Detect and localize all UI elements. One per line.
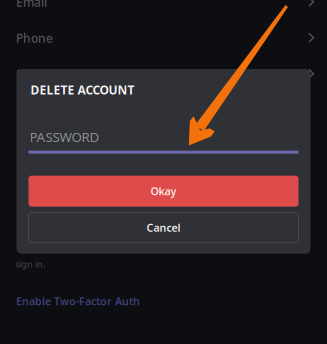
- staticText: DELETE ACCOUNT: [30, 82, 134, 98]
- staticText: Facebook: [16, 66, 70, 82]
- button[interactable]: Enable Two-Factor Auth: [0, 294, 156, 308]
- button[interactable]: Email: [0, 0, 327, 20]
- staticText: Email: [16, 0, 47, 10]
- staticText: Okay: [150, 184, 176, 198]
- staticText: Cancel: [146, 221, 180, 235]
- staticText: sign in.: [15, 258, 46, 270]
- button[interactable]: Phone: [0, 20, 327, 56]
- button[interactable]: Okay: [28, 176, 298, 207]
- staticText: PASSWORD: [29, 128, 99, 146]
- button[interactable]: Facebook: [0, 56, 327, 92]
- staticText: Enable Two-Factor Auth: [16, 294, 140, 308]
- staticText: Phone: [16, 30, 53, 46]
- button[interactable]: Cancel: [28, 213, 298, 243]
